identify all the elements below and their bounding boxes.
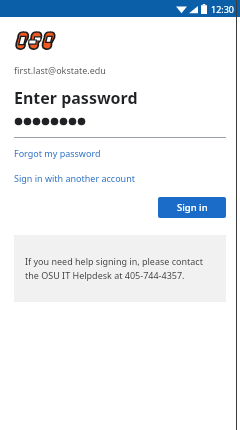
staticText: first.last@okstate.edu [14, 64, 106, 76]
button[interactable] [14, 117, 226, 138]
button[interactable]: Forgot my password [14, 147, 101, 159]
staticText: Sign in with another account [14, 172, 135, 184]
staticText: 12:30 [211, 3, 235, 15]
staticText: Enter password [14, 87, 138, 109]
other: Oklahoma State University logo [15, 29, 55, 52]
staticText: Forgot my password [14, 147, 101, 159]
staticText: Sign in [177, 201, 208, 214]
button[interactable]: Sign in [158, 197, 226, 218]
staticText: If you need help signing in, please cont… [25, 255, 215, 282]
button[interactable]: Sign in with another account [14, 172, 135, 184]
